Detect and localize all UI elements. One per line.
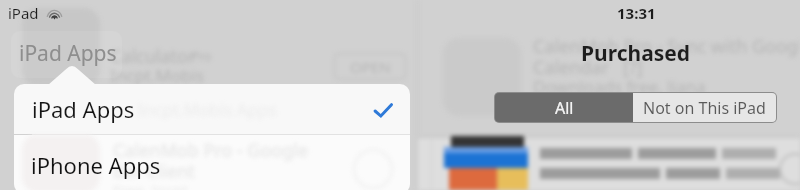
staticText: Incpt.Mobis: [110, 64, 205, 87]
staticText: dar Client: [113, 159, 195, 184]
staticText: Calendar [?]: [533, 55, 643, 80]
button[interactable]: Not on This iPad: [633, 93, 776, 122]
staticText: iPhone Apps: [31, 150, 161, 180]
button[interactable]: All: [495, 93, 633, 122]
button[interactable]: Incpt.Mobis Apps: [14, 84, 410, 134]
staticText: CalenMob Pro - Google: [113, 138, 309, 163]
other: Wi-Fi: [48, 8, 61, 19]
staticText: iPad Apps: [19, 39, 117, 68]
staticText: 13:31: [617, 3, 656, 23]
button[interactable]: CalenMob Pro - Google: [14, 135, 410, 190]
staticText: Downloads free, liana: [533, 75, 706, 98]
staticText: CalenMob Pro - Google: [113, 138, 309, 163]
staticText: Pro: [192, 48, 212, 64]
staticText: Calculator: [110, 44, 196, 69]
staticText: All: [555, 97, 574, 119]
staticText: iPad Apps: [32, 94, 135, 124]
staticText: iPad: [8, 3, 39, 23]
staticText: Not on This iPad: [643, 97, 766, 119]
staticText: Calendar Client: [113, 159, 243, 184]
button[interactable]: iPad Apps: [11, 31, 122, 78]
staticText: CalenMob Pro - Sync with Google: [533, 34, 800, 59]
staticText: Purchased: [581, 39, 691, 68]
